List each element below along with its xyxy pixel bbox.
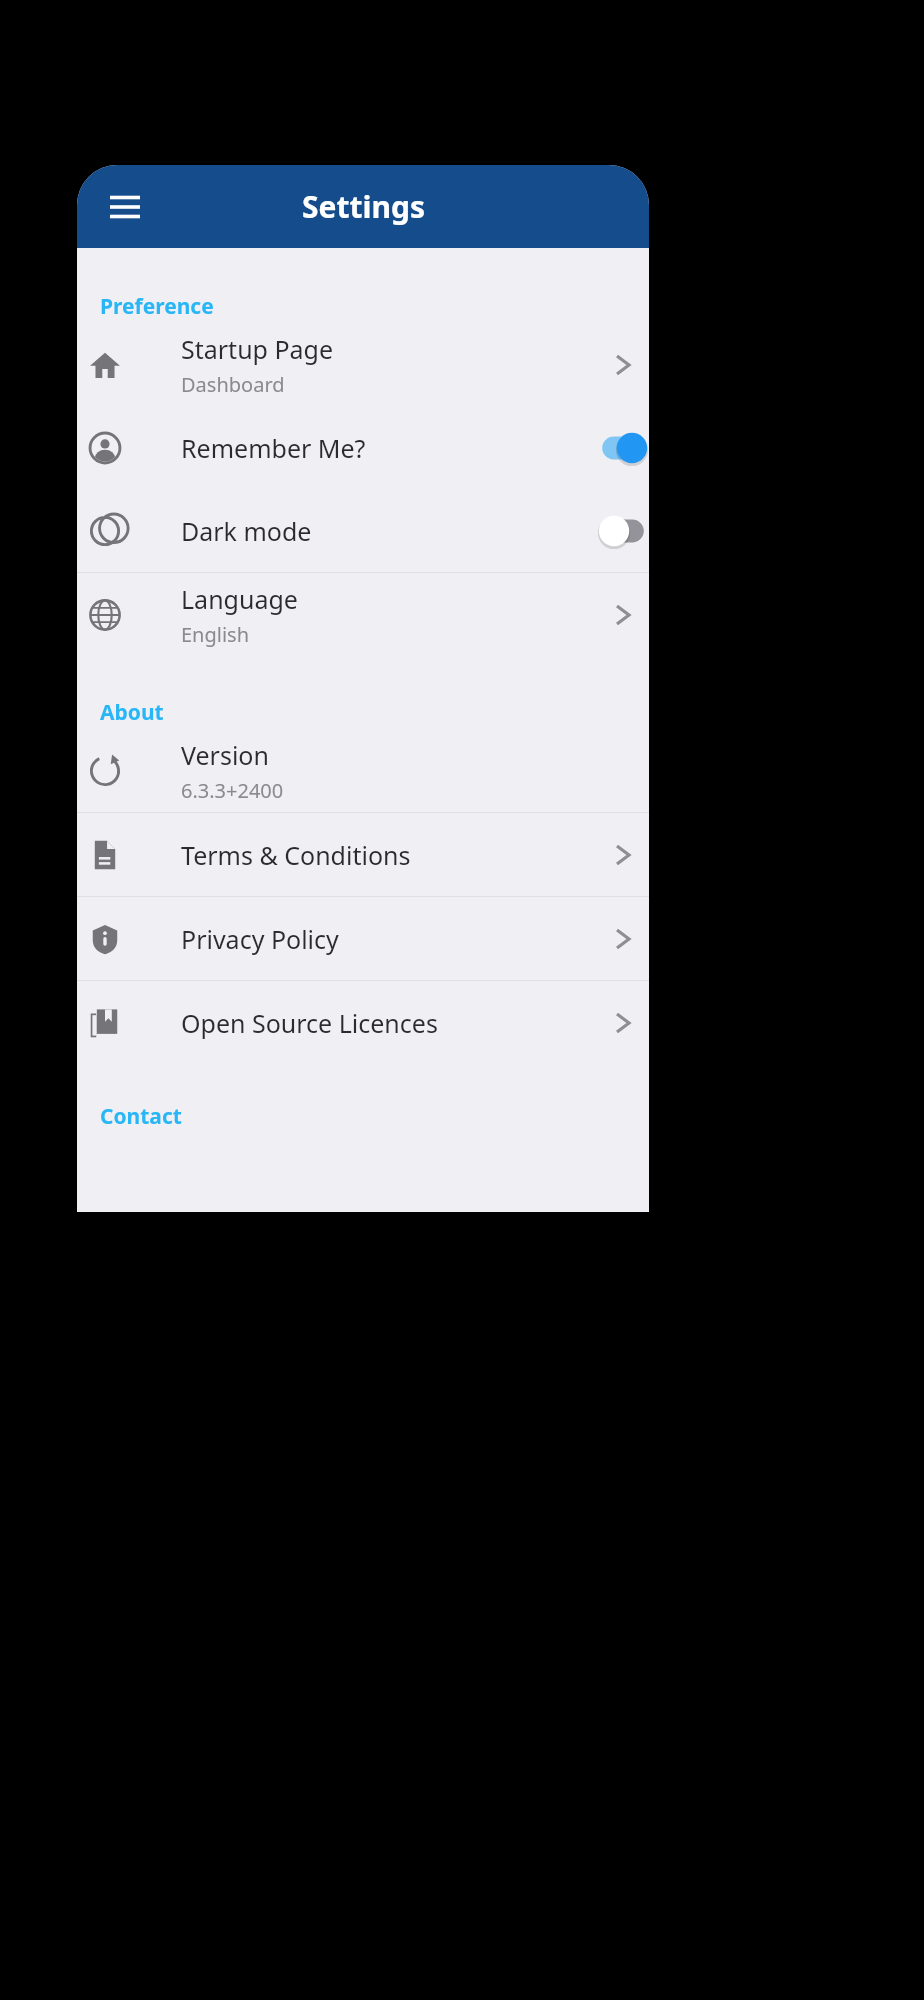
button[interactable]: Privacy Policy	[77, 897, 649, 980]
staticText: Version	[181, 738, 269, 772]
staticText: Terms & Conditions	[181, 838, 411, 872]
staticText: Privacy Policy	[181, 922, 339, 956]
button[interactable]: Version	[77, 729, 649, 812]
staticText: Contact	[100, 1102, 182, 1131]
staticText: Language	[181, 582, 298, 616]
button[interactable]: Off	[597, 509, 649, 553]
staticText: Preference	[100, 292, 214, 321]
button[interactable]: Open navigation menu	[97, 179, 153, 235]
button[interactable]: On	[597, 426, 649, 470]
staticText: 6.3.3+2400	[181, 777, 284, 804]
button[interactable]: Remember Me?	[77, 406, 649, 489]
button[interactable]: Dark mode	[77, 489, 649, 572]
staticText: Open Source Licences	[181, 1006, 438, 1040]
staticText: Startup Page	[181, 332, 334, 366]
staticText: Settings	[302, 186, 425, 227]
staticText: Dark mode	[181, 514, 312, 548]
button[interactable]: Language	[77, 573, 649, 656]
staticText: Remember Me?	[181, 431, 366, 465]
staticText: About	[100, 698, 164, 727]
button[interactable]: Startup Page	[77, 323, 649, 406]
staticText: English	[181, 621, 250, 648]
button[interactable]: Terms & Conditions	[77, 813, 649, 896]
staticText: Dashboard	[181, 371, 285, 398]
button[interactable]: Open Source Licences	[77, 981, 649, 1064]
